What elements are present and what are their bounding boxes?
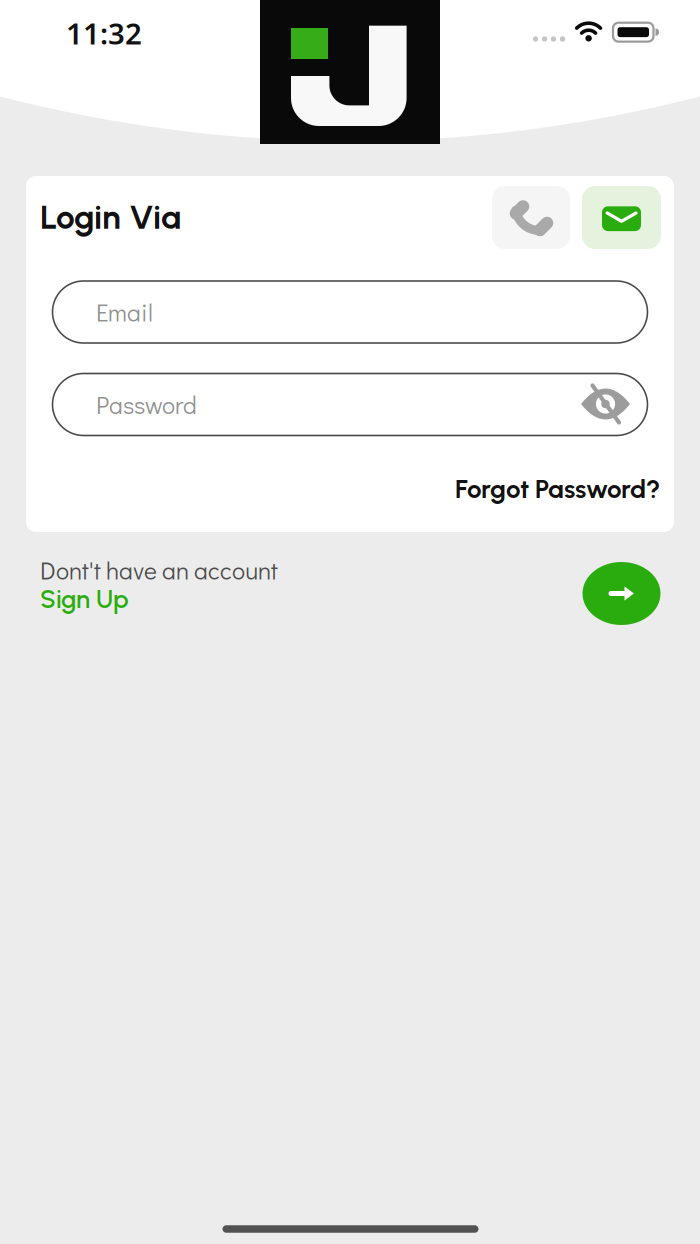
button[interactable]: Login via phone (492, 186, 570, 249)
staticText: Password (96, 388, 197, 420)
staticText: Forgot Password? (455, 473, 660, 505)
button[interactable]: Continue (582, 562, 660, 625)
staticText: Sign Up (40, 584, 129, 614)
staticText: Login Via (40, 197, 181, 237)
button[interactable]: Sign Up (40, 584, 129, 614)
staticText: Dont't have an account (40, 554, 278, 586)
button[interactable]: Login via email (582, 186, 661, 249)
staticText: Email (96, 296, 153, 328)
button[interactable]: Show password (577, 380, 633, 428)
button[interactable]: Forgot Password? (455, 473, 660, 505)
staticText: 11:32 (66, 13, 142, 52)
